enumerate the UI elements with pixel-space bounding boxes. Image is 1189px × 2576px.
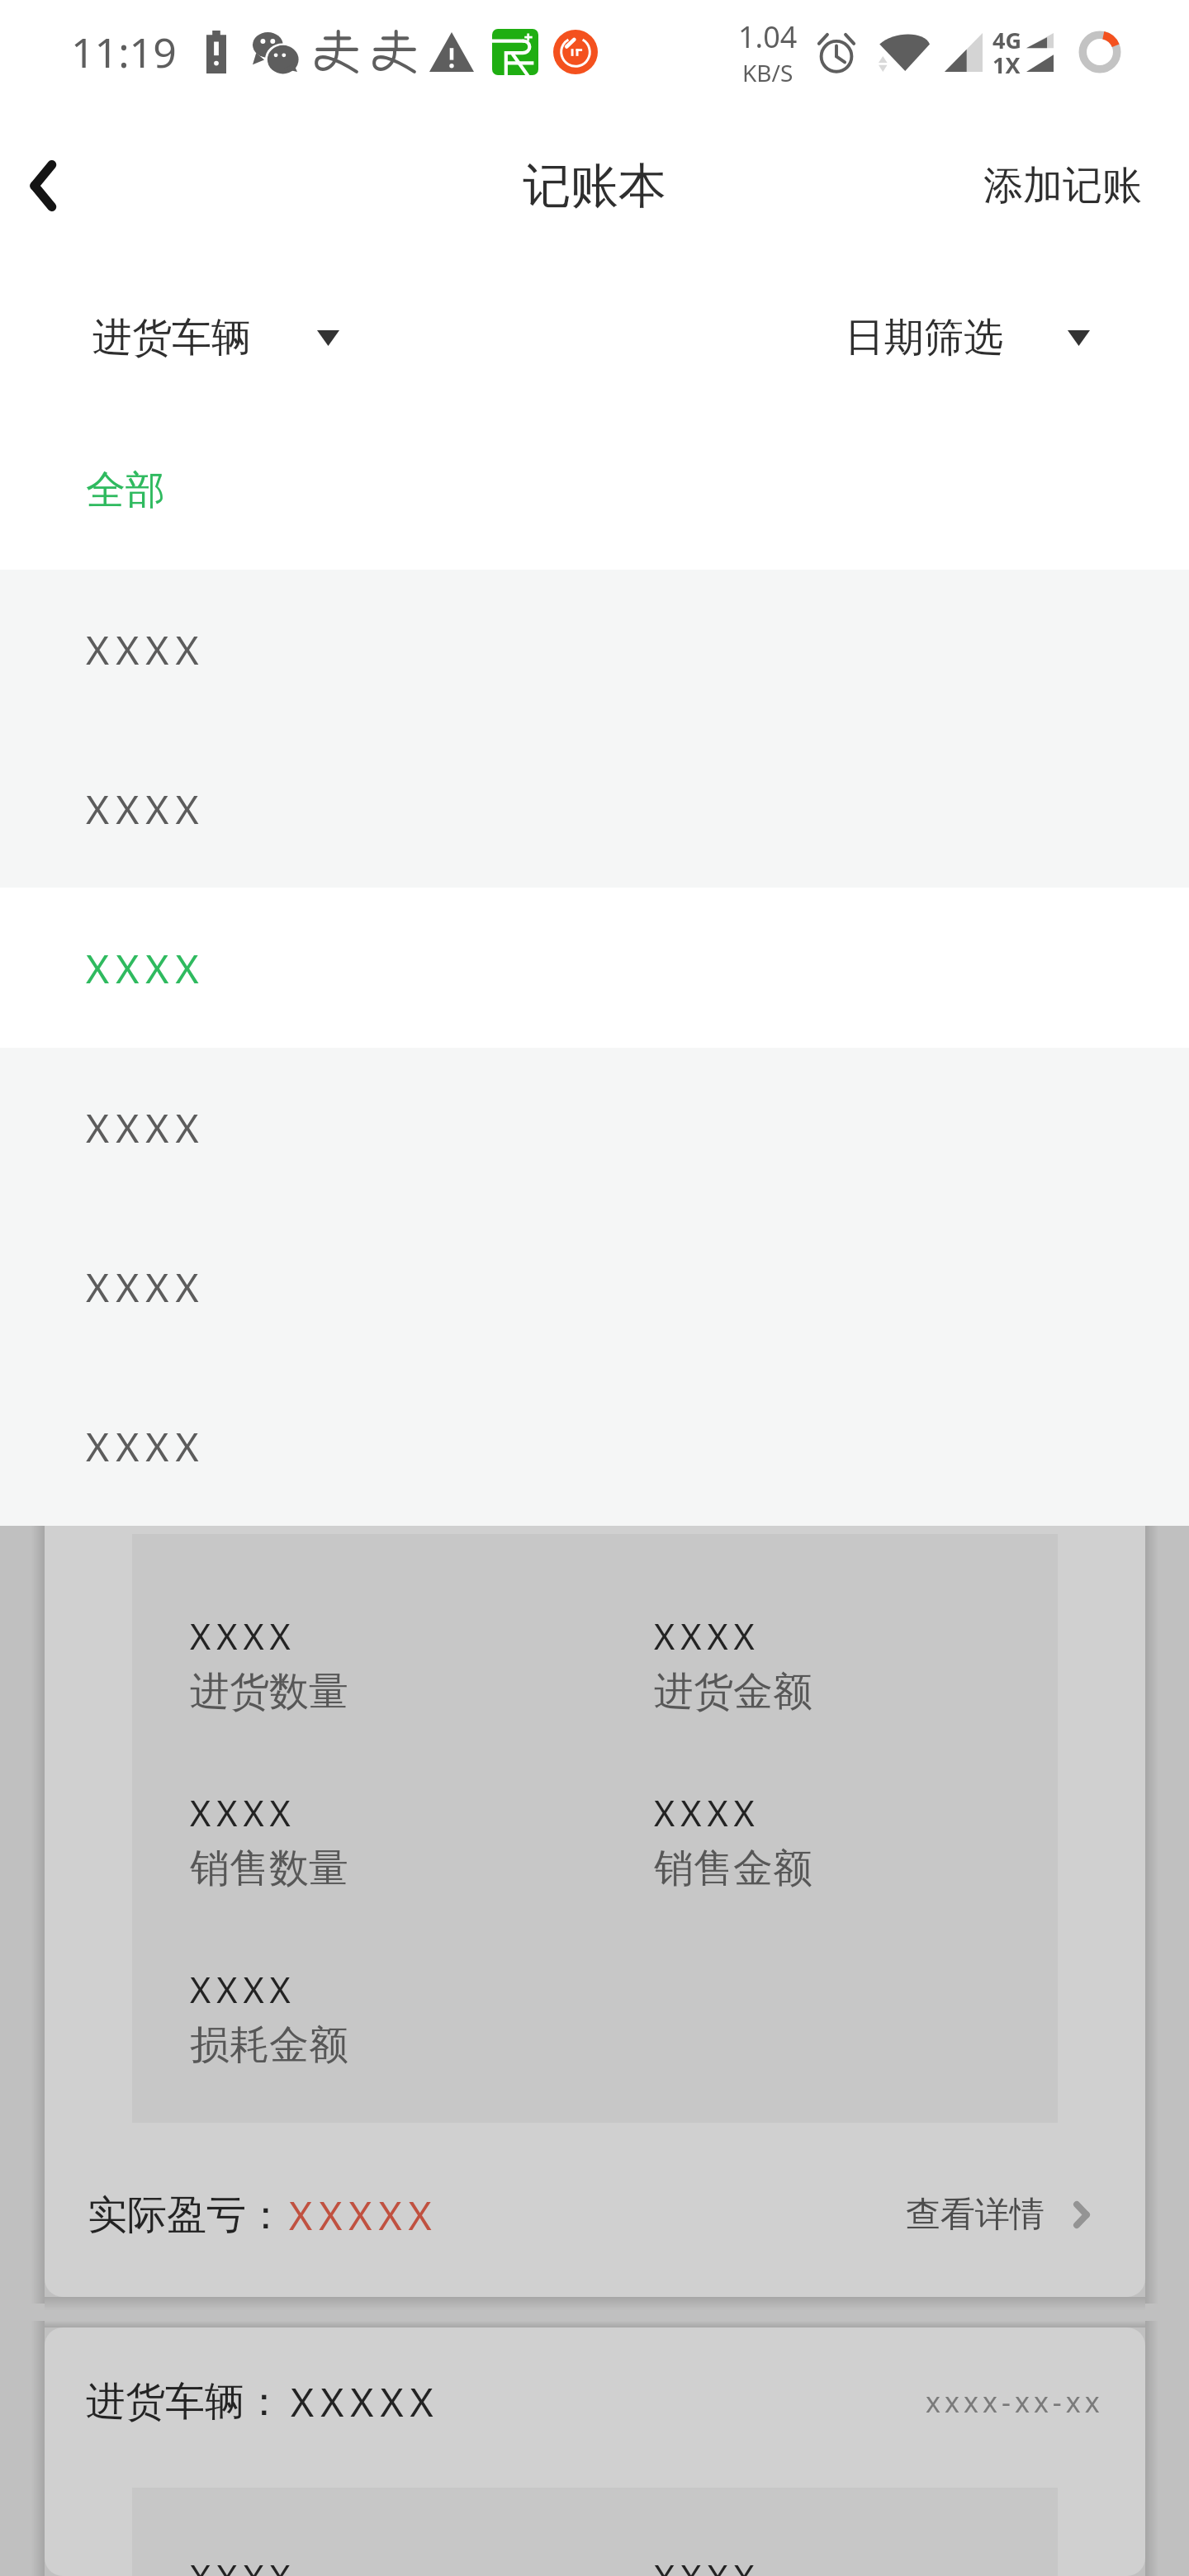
button[interactable]: XXXX — [0, 1366, 1189, 1526]
staticText: xxxx-xx-xx — [926, 2383, 1104, 2421]
button[interactable]: XXXX — [0, 1207, 1189, 1366]
staticText: 记账本 — [523, 156, 666, 216]
staticText: 进货车辆 — [92, 313, 251, 362]
staticText: XXXX — [654, 1788, 760, 1837]
staticText: XXXX — [654, 2553, 760, 2576]
staticText: KB/S — [742, 57, 793, 88]
staticText: XXXX — [86, 623, 206, 676]
staticText: 11:19 — [71, 24, 177, 80]
button[interactable]: 查看详情 — [886, 2181, 1145, 2248]
button[interactable]: XXXX — [0, 729, 1189, 888]
button[interactable]: XXXX — [0, 888, 1189, 1048]
button[interactable]: 实际盈亏： — [45, 2123, 1145, 2297]
button[interactable]: XXXX — [0, 570, 1189, 729]
staticText: 添加记账 — [983, 161, 1142, 211]
staticText: 进货数量 — [190, 1667, 348, 1717]
button[interactable]: Back — [0, 140, 91, 231]
staticText: XXXX — [86, 941, 206, 995]
staticText: XXXX — [86, 782, 206, 836]
staticText: 销售金额 — [654, 1844, 812, 1893]
staticText: XXXX — [86, 1101, 206, 1154]
staticText: 全部 — [86, 466, 165, 515]
staticText: XXXXX — [289, 2188, 438, 2242]
staticText: XXXX — [654, 1612, 760, 1660]
staticText: 1.04 — [738, 17, 798, 57]
button[interactable]: 进货车辆： — [45, 2327, 1145, 2576]
staticText: 1X — [992, 50, 1021, 80]
staticText: XXXX — [190, 2553, 654, 2576]
staticText: 进货车辆： — [86, 2377, 284, 2427]
staticText: 实际盈亏： — [88, 2190, 286, 2240]
button[interactable]: 添加记账 — [959, 141, 1189, 230]
staticText: XXXX — [86, 1260, 206, 1314]
staticText: XXXX — [86, 1419, 206, 1473]
staticText: 损耗金额 — [190, 2020, 348, 2070]
staticText: 4G — [992, 25, 1021, 55]
staticText: 进货金额 — [654, 1667, 812, 1717]
staticText: XXXXX — [291, 2375, 440, 2428]
button[interactable]: XXXX — [45, 1526, 1145, 2297]
button[interactable]: 全部 — [0, 410, 1189, 570]
button[interactable]: 进货车辆 — [0, 293, 356, 382]
staticText: 销售数量 — [190, 1844, 348, 1893]
staticText: XXXX — [190, 1965, 296, 2014]
button[interactable]: 日期筛选 — [828, 293, 1189, 382]
staticText: XXXX — [190, 1788, 296, 1837]
staticText: 查看详情 — [906, 2193, 1045, 2237]
staticText: XXXX — [190, 1612, 296, 1660]
staticText: 日期筛选 — [845, 313, 1003, 362]
button[interactable]: XXXX — [0, 1048, 1189, 1207]
